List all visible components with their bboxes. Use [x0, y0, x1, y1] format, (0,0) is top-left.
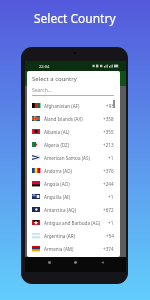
button[interactable]: Recents: [47, 260, 52, 265]
staticText: Antigua and Barbuda (AG): [44, 220, 101, 226]
staticText: American Samoa (AS): [44, 155, 90, 161]
button[interactable]: Algeria (DZ): [27, 138, 120, 151]
button[interactable]: Antarctica (AQ): [27, 203, 120, 216]
button[interactable]: Armenia (AM): [27, 242, 120, 255]
staticText: Armenia (AM): [44, 246, 74, 252]
staticText: +374: [103, 246, 114, 252]
staticText: +672: [103, 207, 114, 213]
button[interactable]: Antigua and Barbuda (AG): [27, 216, 120, 229]
button[interactable]: Albania (AL): [27, 125, 120, 138]
staticText: Antarctica (AQ): [44, 207, 77, 213]
staticText: +1: [108, 194, 114, 200]
staticText: Select Country: [34, 10, 116, 26]
staticText: Åland Islands (AX): [44, 116, 83, 122]
staticText: Angola (AO): [44, 181, 70, 187]
button[interactable]: Back: [100, 260, 105, 265]
staticText: Anguilla (AI): [44, 194, 71, 200]
staticText: +54: [106, 233, 114, 239]
staticText: +376: [103, 168, 114, 174]
staticText: Search...: [32, 87, 52, 94]
staticText: Afghanistan (AF): [44, 103, 80, 109]
button[interactable]: Home: [73, 260, 78, 265]
staticText: +1: [108, 220, 114, 226]
staticText: +1: [108, 155, 114, 161]
staticText: +355: [103, 129, 114, 135]
button[interactable]: Argentina (AR): [27, 229, 120, 242]
button[interactable]: Angola (AO): [27, 177, 120, 190]
button[interactable]: American Samoa (AS): [27, 151, 120, 164]
staticText: 22:04: [39, 64, 50, 69]
staticText: +93: [106, 103, 114, 109]
staticText: Andorra (AD): [44, 168, 72, 174]
staticText: Select a country: [32, 75, 77, 83]
staticText: +213: [103, 142, 114, 148]
staticText: Albania (AL): [44, 129, 70, 135]
staticText: Algeria (DZ): [44, 142, 70, 148]
button[interactable]: Åland Islands (AX): [27, 112, 120, 125]
button[interactable]: Anguilla (AI): [27, 190, 120, 203]
staticText: +358: [103, 116, 114, 122]
staticText: +244: [103, 181, 114, 187]
staticText: Argentina (AR): [44, 233, 76, 239]
button[interactable]: Afghanistan (AF): [27, 99, 120, 112]
button[interactable]: Andorra (AD): [27, 164, 120, 177]
